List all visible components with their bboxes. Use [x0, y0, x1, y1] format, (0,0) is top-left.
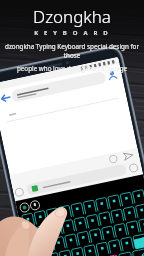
staticText: K E Y B O A R D	[34, 29, 110, 37]
staticText: dzongkha Typing Keyboard special design …	[0, 42, 144, 60]
staticText: Dzongkha	[33, 5, 111, 28]
staticText: people who love dzongkha Language	[0, 64, 144, 73]
button[interactable]: Dzongkha Keyboard preview	[0, 0, 144, 256]
